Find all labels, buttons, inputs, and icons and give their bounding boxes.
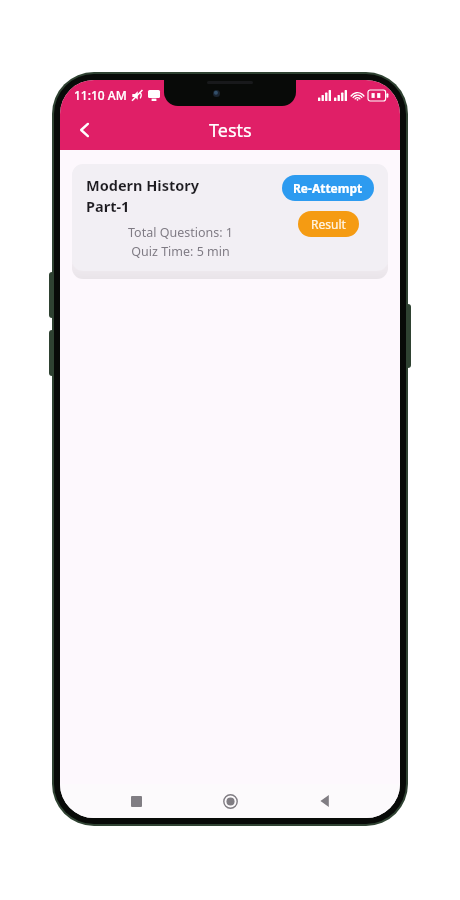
staticText: Result xyxy=(311,216,346,232)
button[interactable]: Home xyxy=(211,784,249,818)
button[interactable]: Back xyxy=(66,111,104,149)
staticText: 11:10 AM xyxy=(74,87,127,103)
button[interactable]: Modern History xyxy=(72,164,388,271)
button[interactable]: Result xyxy=(298,211,359,237)
button[interactable]: Back xyxy=(306,784,344,818)
button[interactable]: Recent apps xyxy=(117,784,155,818)
staticText: Tests xyxy=(209,118,252,143)
button[interactable]: Re-Attempt xyxy=(282,175,374,201)
staticText: Quiz Time: 5 min xyxy=(131,243,230,260)
staticText: Modern History xyxy=(86,175,200,195)
staticText: Total Questions: 1 xyxy=(128,224,233,241)
staticText: Re-Attempt xyxy=(293,180,363,196)
staticText: Part-1 xyxy=(86,196,130,216)
